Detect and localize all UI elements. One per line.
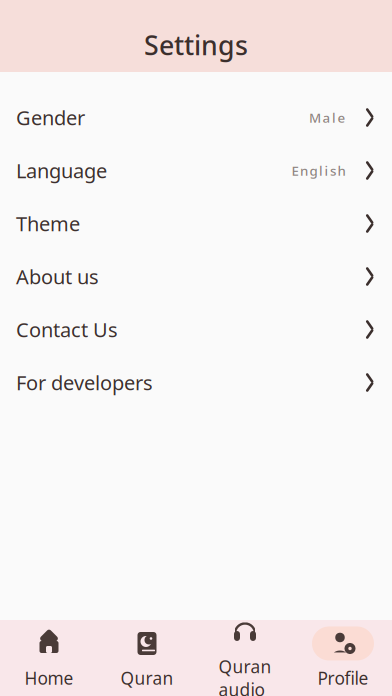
staticText: s [330, 162, 336, 179]
button[interactable]: Theme [0, 197, 392, 250]
staticText: Settings [144, 27, 248, 63]
staticText: Contact Us [16, 316, 118, 343]
staticText: l [332, 109, 336, 126]
staticText: Profile [317, 666, 368, 689]
button[interactable]: Language [0, 144, 392, 197]
staticText: i [324, 162, 328, 179]
staticText: Theme [16, 210, 80, 237]
button[interactable]: Home [0, 618, 98, 696]
staticText: h [337, 162, 345, 179]
staticText: For developers [16, 369, 153, 396]
staticText: n [300, 162, 308, 179]
staticText: E [291, 162, 298, 179]
button[interactable]: Gender [0, 91, 392, 144]
button[interactable]: Quran audio [196, 607, 294, 696]
staticText: Language [16, 157, 107, 184]
button[interactable]: Contact Us [0, 303, 392, 356]
staticText: Quran audio [218, 655, 271, 696]
staticText: l [319, 162, 323, 179]
staticText: Gender [16, 104, 85, 131]
staticText: M [309, 109, 321, 126]
staticText: g [309, 162, 317, 179]
staticText: a [322, 109, 330, 126]
staticText: Home [24, 666, 73, 689]
button[interactable]: For developers [0, 356, 392, 409]
button[interactable]: Quran [98, 618, 196, 696]
staticText: e [337, 109, 345, 126]
staticText: About us [16, 263, 99, 290]
button[interactable]: Profile [294, 618, 392, 696]
staticText: Quran [120, 666, 173, 689]
button[interactable]: About us [0, 250, 392, 303]
